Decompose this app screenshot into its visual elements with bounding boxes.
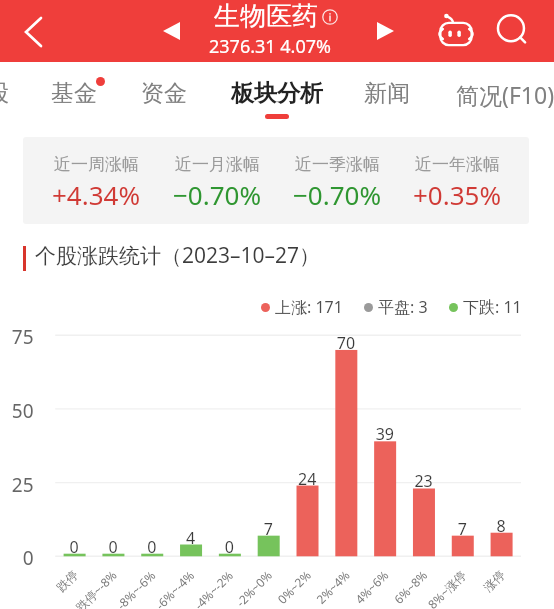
staticText: 下跌: 11 [463,296,522,318]
button[interactable]: 上涨: 171 [261,296,343,318]
staticText: +0.35% [413,177,502,212]
staticText: 板块分析 [231,79,323,108]
staticText: 股 [0,79,9,108]
button[interactable]: Previous sector [151,11,191,51]
button[interactable]: Next sector [365,11,405,51]
button[interactable]: 资金 [141,62,187,119]
staticText: −0.70% [293,177,382,212]
button[interactable]: Search [491,9,535,53]
staticText: 上涨: 171 [275,296,343,318]
staticText: +4.34% [52,177,141,212]
staticText: −0.70% [173,177,262,212]
staticText: 近一月涨幅 [175,154,260,175]
button[interactable]: 简况(F10) [456,62,554,121]
button[interactable]: 股 [0,62,9,119]
staticText: 近一年涨幅 [415,154,500,175]
staticText: 平盘: 3 [378,296,428,318]
button[interactable]: 下跌: 11 [449,296,522,318]
button[interactable]: Back [9,7,58,56]
button[interactable]: 基金 [51,62,97,119]
staticText: 近一周涨幅 [54,154,139,175]
button[interactable]: 板块分析 [231,62,323,119]
staticText: 基金 [51,79,97,108]
staticText: 2376.31 4.07% [209,34,331,59]
button[interactable]: AI assistant [434,10,478,54]
staticText: 资金 [141,79,187,108]
staticText: 生物医药 [214,0,318,33]
staticText: 简况(F10) [456,79,554,110]
button[interactable]: 新闻 [364,62,410,119]
staticText: 新闻 [364,79,410,108]
staticText: 近一季涨幅 [295,154,380,175]
staticText: 个股涨跌统计（2023–10–27） [35,241,321,270]
button[interactable]: 平盘: 3 [364,296,428,318]
button[interactable]: 近一周涨幅 [23,137,529,224]
